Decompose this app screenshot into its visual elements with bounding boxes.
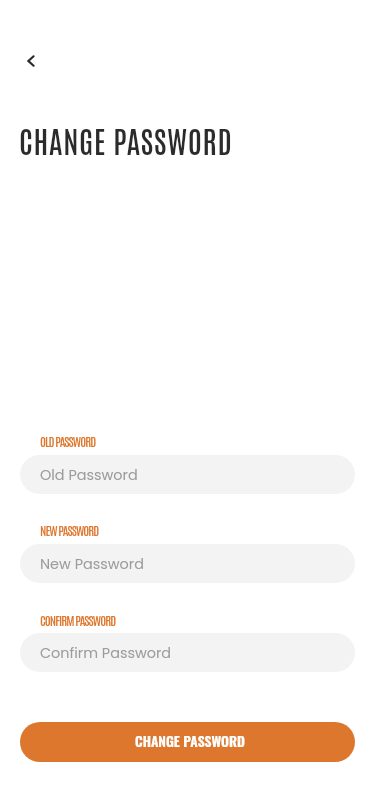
button[interactable]: Back xyxy=(13,43,49,79)
button[interactable]: Confirm Password xyxy=(20,633,355,672)
staticText: Old Password xyxy=(40,465,138,485)
staticText: CHANGE PASSWORD xyxy=(19,120,233,159)
staticText: OLD PASSWORD xyxy=(40,432,96,448)
staticText: New Password xyxy=(40,554,144,574)
staticText: NEW PASSWORD xyxy=(40,521,99,537)
staticText: Confirm Password xyxy=(40,643,172,663)
button[interactable]: New Password xyxy=(20,544,355,583)
button[interactable]: Old Password xyxy=(20,455,355,494)
staticText: CONFIRM PASSWORD xyxy=(40,611,116,627)
button[interactable]: CHANGE PASSWORD xyxy=(20,722,355,762)
staticText: CHANGE PASSWORD xyxy=(135,731,245,751)
